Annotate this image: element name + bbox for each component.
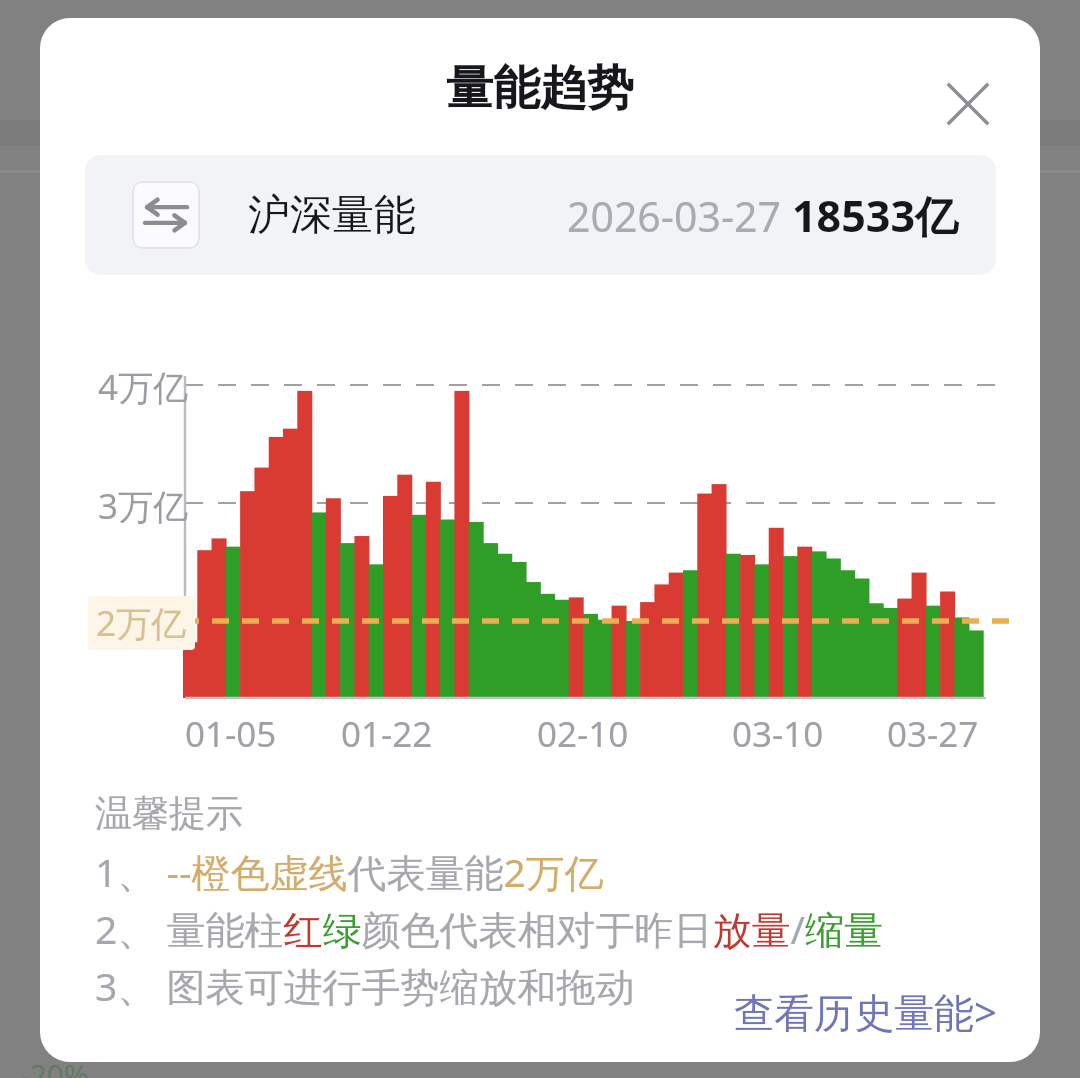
- staticText: 2、 量能柱红绿颜色代表相对于昨日放量/缩量: [95, 902, 883, 955]
- staticText: 量能趋势: [446, 59, 634, 118]
- staticText: 4万亿: [98, 363, 189, 411]
- staticText: 温馨提示: [95, 790, 243, 837]
- staticText: 02-10: [537, 710, 629, 758]
- staticText: 03-27: [887, 710, 979, 758]
- button[interactable]: Switch index: [85, 155, 996, 275]
- staticText: 18533亿: [792, 186, 958, 245]
- staticText: 03-10: [732, 710, 824, 758]
- staticText: 2026-03-27: [567, 188, 782, 244]
- other: Switch index: [132, 181, 200, 249]
- staticText: 沪深量能: [248, 189, 416, 242]
- staticText: 3、 图表可进行手势缩放和拖动: [95, 959, 635, 1012]
- staticText: 01-22: [341, 710, 433, 758]
- staticText: 2万亿: [96, 599, 187, 647]
- button[interactable]: 查看历史量能>: [726, 976, 1005, 1047]
- staticText: 查看历史量能>: [734, 984, 997, 1039]
- staticText: 01-05: [185, 710, 277, 758]
- staticText: -20%: [20, 1055, 89, 1078]
- button[interactable]: Close: [920, 56, 1016, 152]
- staticText: 1、 --橙色虚线代表量能2万亿: [95, 845, 604, 898]
- staticText: 3万亿: [98, 482, 189, 530]
